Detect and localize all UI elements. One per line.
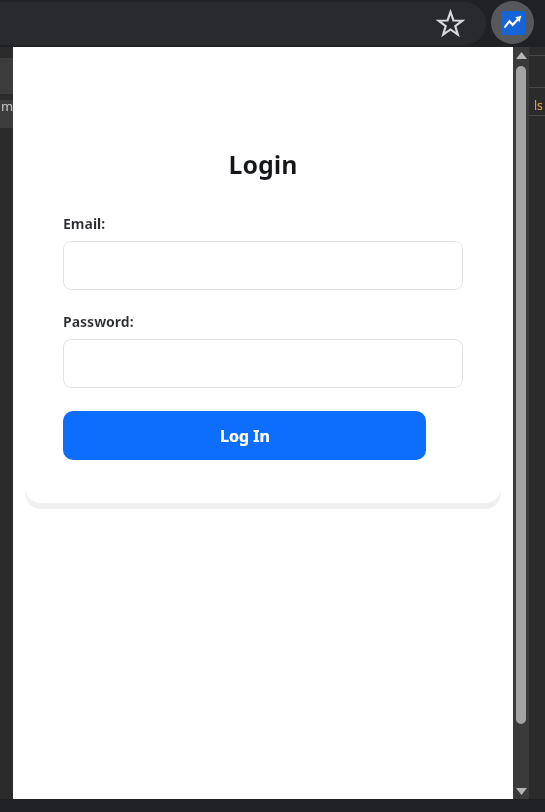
staticText: Log In	[220, 425, 270, 447]
staticText: ls	[534, 97, 543, 113]
button[interactable]: Log In	[63, 411, 426, 460]
button[interactable]: Scroll up	[513, 47, 529, 63]
button[interactable]: Bookmark this page	[428, 2, 472, 46]
button[interactable]: Text field	[63, 241, 463, 290]
button[interactable]: Extension	[491, 1, 534, 44]
button[interactable]: Scroll down	[513, 783, 529, 799]
button[interactable]: Scroll thumb	[516, 66, 526, 724]
staticText: m	[1, 97, 14, 115]
button[interactable]: Text field	[63, 339, 463, 388]
staticText: Email:	[63, 214, 106, 233]
staticText: Login	[228, 147, 298, 181]
staticText: Password:	[63, 312, 134, 331]
